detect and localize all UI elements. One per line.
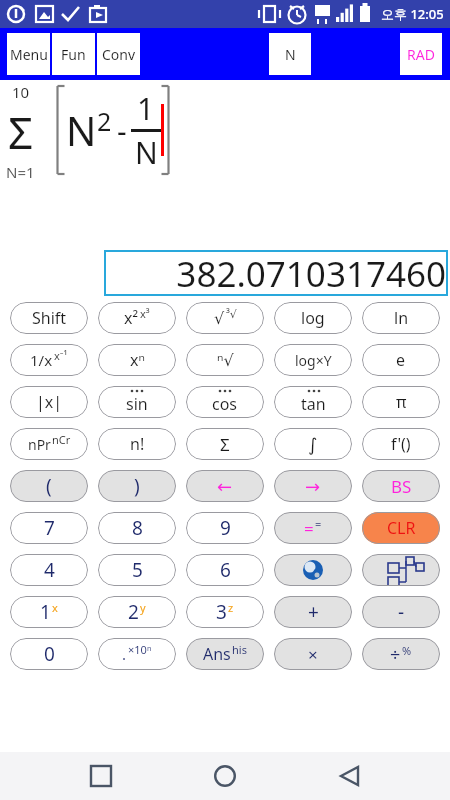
button[interactable]: e	[362, 344, 440, 376]
staticText: →	[305, 476, 321, 497]
button[interactable]: Menu	[7, 33, 50, 75]
button[interactable]: →	[274, 470, 352, 502]
button[interactable]: Back	[326, 752, 374, 800]
staticText: -	[117, 110, 127, 151]
staticText: nPr	[28, 435, 51, 454]
button[interactable]: 5	[98, 554, 176, 586]
staticText: z	[228, 600, 234, 615]
staticText: 0	[44, 641, 55, 667]
staticText: x²	[124, 307, 139, 329]
button[interactable]: √	[186, 302, 264, 334]
button[interactable]: ⁿ√	[186, 344, 264, 376]
button[interactable]: Home	[201, 752, 249, 800]
staticText: (	[46, 473, 52, 499]
button[interactable]: )	[98, 470, 176, 502]
staticText: N	[66, 103, 97, 157]
button[interactable]: -	[362, 596, 440, 628]
button[interactable]: Conv	[97, 33, 140, 75]
staticText: =	[304, 517, 314, 540]
staticText: x³	[140, 306, 150, 321]
staticText: n!	[130, 433, 145, 455]
button[interactable]: f'()	[362, 428, 440, 460]
staticText: 6	[220, 557, 231, 583]
button[interactable]: x²	[98, 302, 176, 334]
button[interactable]: 1/x	[10, 344, 88, 376]
staticText: ←	[217, 476, 233, 497]
staticText: N=1	[6, 162, 35, 180]
staticText: e	[396, 349, 406, 371]
staticText: cos	[212, 393, 238, 415]
button[interactable]: 7	[10, 512, 88, 544]
button[interactable]: tree	[362, 554, 440, 586]
staticText: π	[396, 391, 407, 413]
button[interactable]: ÷	[362, 638, 440, 670]
button[interactable]: log	[274, 302, 352, 334]
staticText: 2	[97, 104, 112, 138]
staticText: ∫	[308, 434, 318, 455]
staticText: 2	[128, 599, 139, 625]
button[interactable]: RAD	[400, 33, 442, 75]
staticText: 3	[216, 599, 227, 625]
button[interactable]: ∫	[274, 428, 352, 460]
button[interactable]: BS	[362, 470, 440, 502]
staticText: ln	[394, 307, 409, 329]
button[interactable]: N	[269, 33, 311, 75]
staticText: 1	[40, 599, 51, 625]
staticText: ×10ⁿ	[128, 642, 152, 657]
staticText: %	[402, 643, 412, 658]
staticText: 382.0710317460	[176, 250, 446, 296]
button[interactable]: cos	[186, 386, 264, 418]
staticText: y	[140, 600, 146, 615]
staticText: -	[398, 599, 405, 625]
button[interactable]: nPr	[10, 428, 88, 460]
button[interactable]: globe	[274, 554, 352, 586]
button[interactable]: xⁿ	[98, 344, 176, 376]
staticText: Menu	[10, 45, 48, 64]
staticText: log	[301, 307, 325, 329]
button[interactable]: Ans	[186, 638, 264, 670]
staticText: ×	[308, 643, 318, 666]
button[interactable]: 3	[186, 596, 264, 628]
button[interactable]: log×Y	[274, 344, 352, 376]
staticText: Σ	[220, 433, 230, 456]
button[interactable]: 2	[98, 596, 176, 628]
button[interactable]: =	[274, 512, 352, 544]
button[interactable]: 1	[10, 596, 88, 628]
button[interactable]: (	[10, 470, 88, 502]
button[interactable]: 6	[186, 554, 264, 586]
staticText: log×Y	[295, 351, 332, 370]
button[interactable]: ln	[362, 302, 440, 334]
button[interactable]: Σ	[186, 428, 264, 460]
button[interactable]: Fun	[52, 33, 95, 75]
staticText: ÷	[390, 642, 401, 667]
staticText: 5	[132, 557, 143, 583]
staticText: Shift	[32, 307, 67, 329]
button[interactable]: Shift	[10, 302, 88, 334]
button[interactable]: +	[274, 596, 352, 628]
staticText: √	[214, 309, 225, 328]
staticText: )	[134, 473, 140, 499]
button[interactable]: CLR	[362, 512, 440, 544]
button[interactable]: n!	[98, 428, 176, 460]
button[interactable]: ×	[274, 638, 352, 670]
staticText: N	[135, 132, 158, 173]
button[interactable]: 382.0710317460	[104, 250, 448, 296]
staticText: sin	[126, 393, 148, 415]
button[interactable]: 9	[186, 512, 264, 544]
staticText: nCr	[52, 432, 71, 447]
button[interactable]: |x|	[10, 386, 88, 418]
staticText: 4	[44, 557, 55, 583]
button[interactable]: 0	[10, 638, 88, 670]
staticText: ³√	[226, 306, 237, 321]
staticText: his	[232, 642, 247, 657]
button[interactable]: 4	[10, 554, 88, 586]
button[interactable]: tan	[274, 386, 352, 418]
button[interactable]: ←	[186, 470, 264, 502]
button[interactable]: .	[98, 638, 176, 670]
button[interactable]: π	[362, 386, 440, 418]
button[interactable]: sin	[98, 386, 176, 418]
button[interactable]: 8	[98, 512, 176, 544]
button[interactable]: Recents	[77, 752, 125, 800]
staticText: 10	[12, 82, 30, 102]
staticText: Ans	[203, 643, 231, 665]
